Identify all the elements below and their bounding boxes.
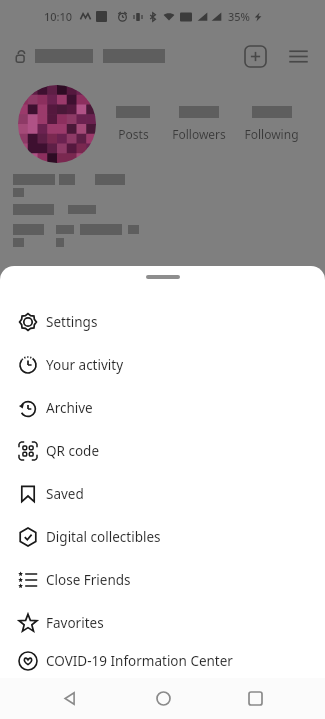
button[interactable]: Saved <box>0 472 325 515</box>
staticText: QR code <box>46 442 100 460</box>
staticText: 10:10 <box>44 9 73 24</box>
staticText: Archive <box>46 399 93 417</box>
button[interactable]: Back <box>47 678 93 719</box>
staticText: Your activity <box>46 356 124 374</box>
staticText: COVID-19 Information Center <box>46 652 233 670</box>
button[interactable]: New post <box>239 40 271 72</box>
button[interactable]: Recent apps <box>232 678 278 719</box>
staticText: Digital collectibles <box>46 528 161 546</box>
staticText: Saved <box>46 485 84 503</box>
button[interactable]: Menu <box>282 40 314 72</box>
button[interactable]: Close Friends <box>0 558 325 601</box>
staticText: Following <box>244 126 299 142</box>
staticText: Posts <box>118 126 149 142</box>
button[interactable]: Archive <box>0 386 325 429</box>
button[interactable]: COVID-19 Information Center <box>0 644 325 678</box>
button[interactable]: Digital collectibles <box>0 515 325 558</box>
button[interactable]: Your activity <box>0 343 325 386</box>
button[interactable]: QR code <box>0 429 325 472</box>
staticText: Favorites <box>46 614 104 632</box>
staticText: Followers <box>172 126 226 142</box>
button[interactable]: Settings <box>0 300 325 343</box>
staticText: 35% <box>228 9 250 24</box>
button[interactable]: Home <box>140 678 186 719</box>
button[interactable]: Favorites <box>0 601 325 644</box>
staticText: Settings <box>46 313 98 331</box>
staticText: Close Friends <box>46 571 131 589</box>
